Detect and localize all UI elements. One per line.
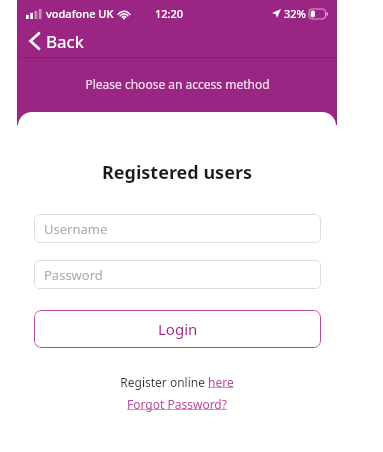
button[interactable]: Username xyxy=(34,214,321,243)
staticText: 32% xyxy=(284,6,306,21)
button[interactable]: Login xyxy=(34,310,321,348)
staticText: Registered users xyxy=(102,160,252,185)
staticText: Forgot Password? xyxy=(127,396,227,412)
button[interactable]: Back xyxy=(21,26,92,56)
button[interactable]: Register online here xyxy=(120,374,234,390)
button[interactable]: Forgot Password? xyxy=(127,396,227,412)
staticText: Username xyxy=(44,220,108,238)
staticText: Login xyxy=(158,319,198,339)
staticText: Back xyxy=(46,30,84,53)
staticText: Please choose an access method xyxy=(85,76,270,92)
button[interactable]: Password xyxy=(34,260,321,289)
staticText: 12:20 xyxy=(155,6,184,21)
staticText: Register online here xyxy=(120,374,234,390)
staticText: vodafone UK xyxy=(46,6,114,21)
staticText: Password xyxy=(44,266,103,284)
